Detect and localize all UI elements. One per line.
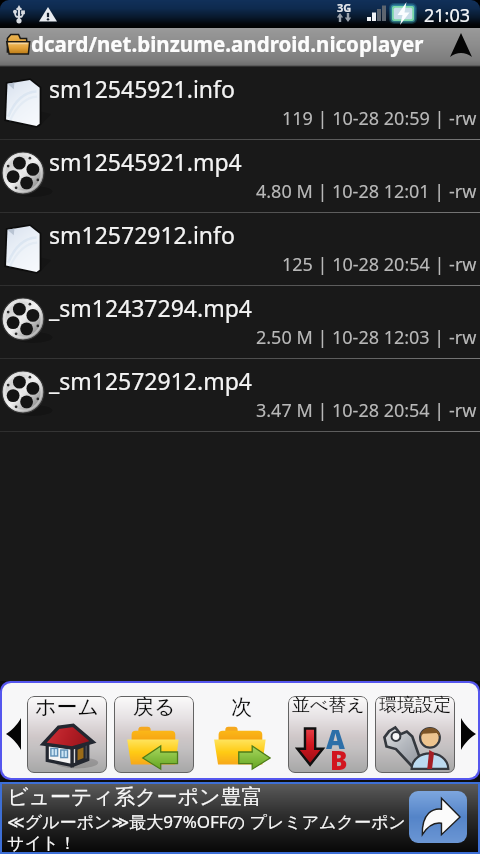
button[interactable]: 戻る <box>114 696 194 773</box>
staticText: 3G <box>337 0 352 15</box>
staticText: sm12572912.info <box>49 219 235 250</box>
staticText: ホーム <box>35 694 99 720</box>
staticText: サイト！ <box>7 833 77 852</box>
button[interactable]: sm12572912.info <box>0 213 480 286</box>
button[interactable]: sm12545921.mp4 <box>0 140 480 213</box>
button[interactable]: _sm12572912.mp4 <box>0 359 480 432</box>
staticText: 環境設定 <box>379 694 451 717</box>
staticText: dcard/net.binzume.android.nicoplayer <box>31 30 424 58</box>
staticText: 次 <box>231 694 252 720</box>
button[interactable]: sm12545921.info <box>0 67 480 140</box>
button[interactable]: 並べ替え <box>288 696 368 773</box>
staticText: 125 | 10-28 20:54 | -rw <box>282 252 477 277</box>
staticText: 119 | 10-28 20:59 | -rw <box>282 106 477 131</box>
staticText: _sm12572912.mp4 <box>49 365 252 396</box>
staticText: 戻る <box>133 694 176 720</box>
button[interactable]: ホーム <box>27 696 107 773</box>
button[interactable]: 環境設定 <box>375 696 455 773</box>
staticText: B <box>330 742 348 777</box>
staticText: 3.47 M | 10-28 20:54 | -rw <box>256 398 477 423</box>
staticText: A <box>326 721 345 756</box>
staticText: ビューティ系クーポン豊富 <box>7 784 263 810</box>
staticText: sm12545921.info <box>49 73 235 104</box>
button[interactable]: _sm12437294.mp4 <box>0 286 480 359</box>
button[interactable]: Share <box>409 791 467 843</box>
staticText: sm12545921.mp4 <box>49 146 242 177</box>
staticText: 4.80 M | 10-28 12:01 | -rw <box>256 179 477 204</box>
staticText: 21:03 <box>424 3 471 28</box>
staticText: ≪グルーポン≫最大97%OFFの プレミアムクーポン <box>7 810 406 833</box>
button[interactable]: 次 <box>201 696 281 773</box>
staticText: _sm12437294.mp4 <box>49 292 252 323</box>
staticText: 並べ替え <box>292 694 365 717</box>
staticText: 2.50 M | 10-28 12:03 | -rw <box>256 325 477 350</box>
